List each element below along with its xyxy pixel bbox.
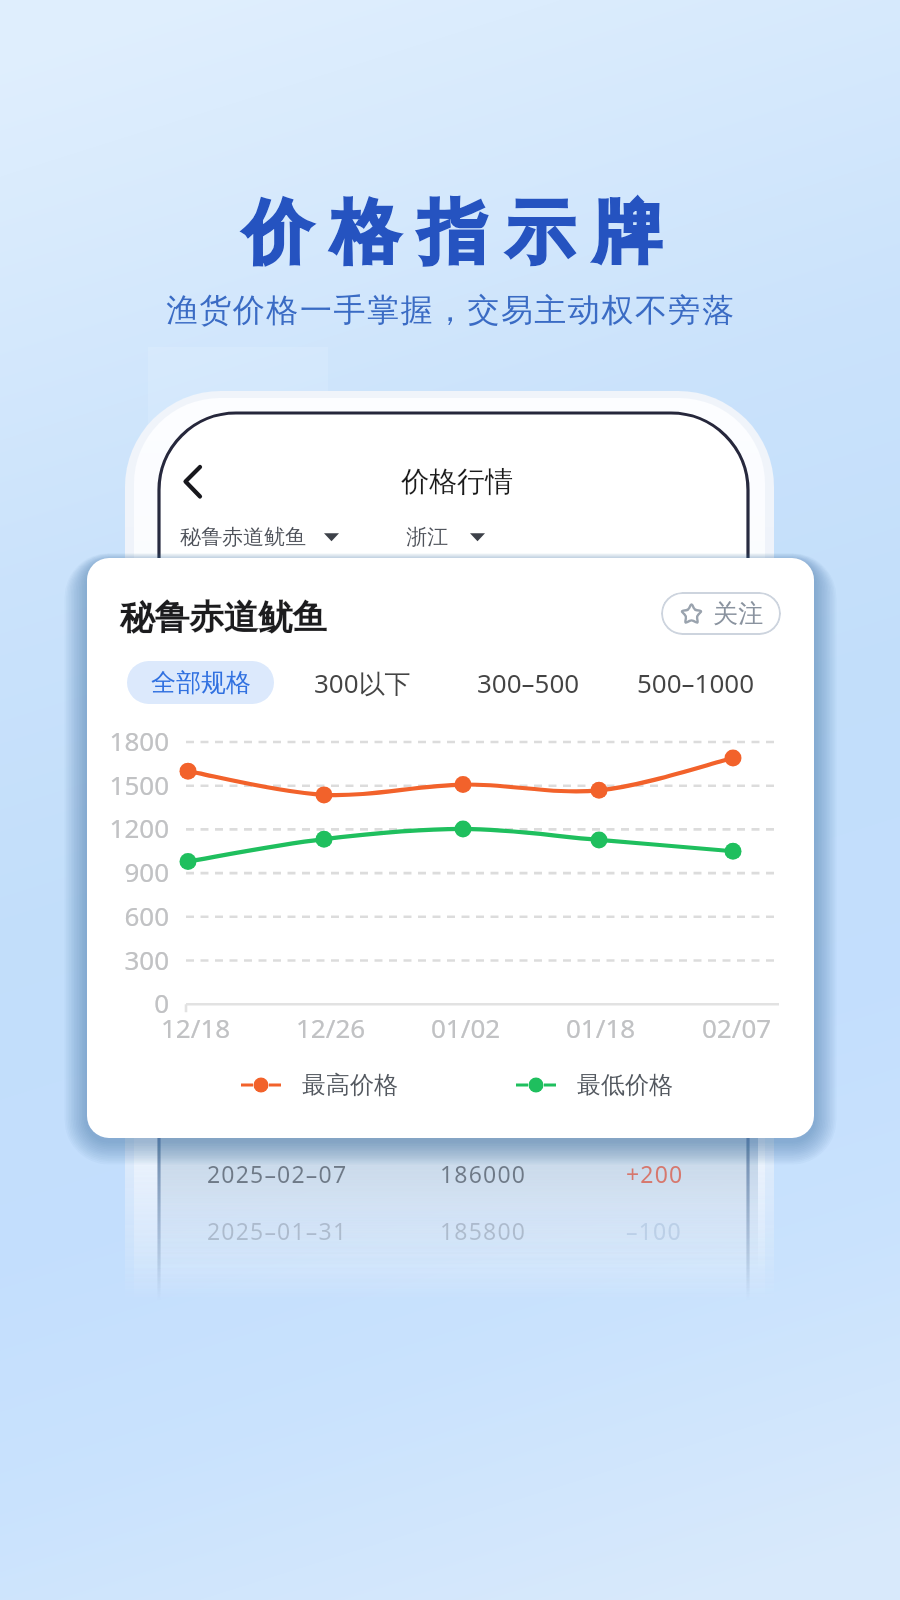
staticText: 01/02 <box>431 1010 501 1045</box>
staticText: 最高价格 <box>302 1070 398 1100</box>
staticText: 浙江 <box>406 524 448 550</box>
button[interactable]: Back <box>168 458 218 508</box>
staticText: 300 <box>124 942 169 977</box>
staticText: 价格行情 <box>401 464 513 499</box>
staticText: 全部规格 <box>151 667 251 698</box>
staticText: 12/26 <box>296 1010 366 1045</box>
button[interactable]: 500–1000 <box>633 661 759 704</box>
staticText: 900 <box>124 854 169 889</box>
staticText: 关注 <box>713 598 763 629</box>
staticText: 1500 <box>109 767 169 802</box>
button[interactable]: 300以下 <box>306 661 418 704</box>
staticText: +200 <box>626 1158 684 1189</box>
staticText: 1800 <box>109 723 169 758</box>
staticText: 2025–01–31 <box>207 1215 440 1246</box>
staticText: 300以下 <box>314 665 411 701</box>
button[interactable]: 2025–02–07 <box>207 1150 737 1196</box>
staticText: 01/18 <box>566 1010 636 1045</box>
button[interactable]: 浙江 <box>406 521 485 553</box>
staticText: 秘鲁赤道鱿鱼 <box>180 524 306 550</box>
staticText: 300–500 <box>477 665 580 700</box>
staticText: 186000 <box>440 1158 626 1189</box>
staticText: 185800 <box>440 1215 626 1246</box>
button[interactable]: 关注 <box>661 592 781 635</box>
button[interactable]: 最高价格 <box>241 1070 398 1100</box>
staticText: 秘鲁赤道鱿鱼 <box>120 596 327 639</box>
staticText: 1200 <box>109 810 169 845</box>
button[interactable]: 最低价格 <box>516 1070 673 1100</box>
staticText: 2025–02–07 <box>207 1158 440 1189</box>
staticText: 12/18 <box>161 1010 231 1045</box>
staticText: 500–1000 <box>637 665 755 700</box>
button[interactable]: 全部规格 <box>127 661 274 704</box>
staticText: 最低价格 <box>577 1070 673 1100</box>
button[interactable]: 2025–01–31 <box>207 1207 737 1253</box>
staticText: 渔货价格一手掌握，交易主动权不旁落 <box>166 290 736 330</box>
button[interactable]: 300–500 <box>471 661 586 704</box>
staticText: 02/07 <box>702 1010 772 1045</box>
button[interactable]: 秘鲁赤道鱿鱼 <box>180 521 339 553</box>
staticText: 0 <box>154 985 169 1020</box>
staticText: –100 <box>626 1215 682 1246</box>
staticText: 价格指示牌 <box>243 190 681 277</box>
staticText: 600 <box>124 898 169 933</box>
